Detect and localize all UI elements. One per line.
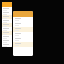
button[interactable]: [15, 27, 31, 32]
button[interactable]: [15, 42, 31, 47]
button[interactable]: [3, 19, 11, 23]
button[interactable]: [3, 7, 11, 11]
button[interactable]: [3, 23, 11, 27]
button[interactable]: [3, 15, 11, 19]
button[interactable]: App bar: [13, 11, 33, 17]
button[interactable]: [15, 32, 31, 37]
button[interactable]: [15, 17, 31, 22]
button[interactable]: [15, 37, 31, 42]
button[interactable]: [3, 39, 11, 43]
button[interactable]: [3, 35, 11, 39]
button[interactable]: [3, 43, 11, 47]
button[interactable]: App bar: [2, 2, 12, 7]
button[interactable]: [3, 27, 11, 31]
button[interactable]: [15, 22, 31, 27]
button[interactable]: [3, 31, 11, 35]
button[interactable]: [3, 11, 11, 15]
